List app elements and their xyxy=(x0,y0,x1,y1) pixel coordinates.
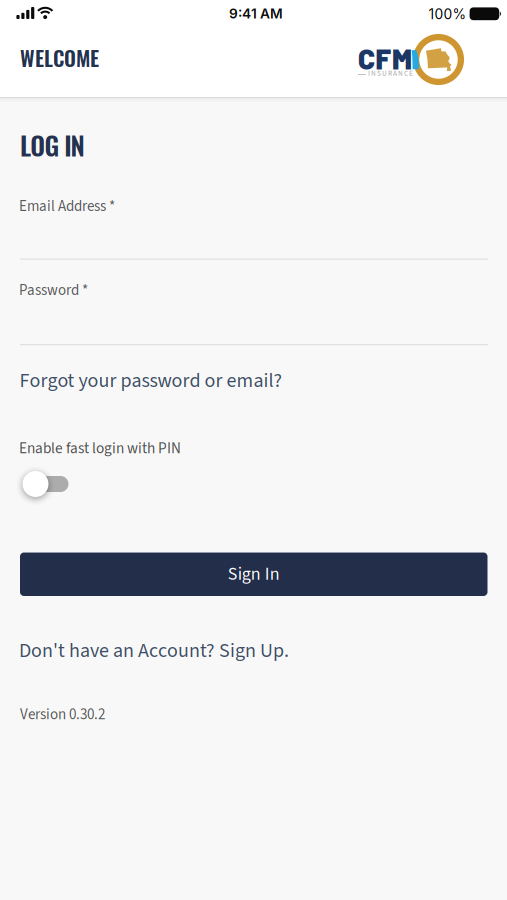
staticText: 100% xyxy=(428,6,466,23)
staticText: Password * xyxy=(19,280,88,301)
staticText: Version 0.30.2 xyxy=(20,704,105,725)
staticText: Email Address * xyxy=(19,196,115,217)
staticText: Forgot your password or email? xyxy=(19,366,282,395)
staticText: CFM xyxy=(358,42,412,75)
staticText: Enable fast login with PIN xyxy=(19,438,181,459)
staticText: INSURANCE xyxy=(368,68,413,79)
staticText: 9:41 AM xyxy=(229,5,283,22)
staticText: WELCOME xyxy=(20,42,99,73)
button[interactable]: Forgot your password or email? xyxy=(19,366,282,395)
button[interactable]: CFM xyxy=(356,32,466,88)
staticText: LOG IN xyxy=(20,126,84,164)
button[interactable]: Don't have an Account? Sign Up. xyxy=(19,637,289,665)
staticText: Sign In xyxy=(228,561,280,587)
button[interactable] xyxy=(19,469,69,497)
button[interactable]: Sign In xyxy=(20,552,487,596)
staticText: Don't have an Account? Sign Up. xyxy=(19,637,289,665)
